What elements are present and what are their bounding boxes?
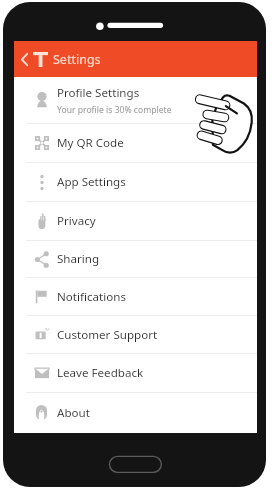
button[interactable]: Back — [17, 46, 31, 72]
button[interactable]: About — [14, 393, 257, 432]
staticText: Settings — [53, 51, 101, 68]
button[interactable]: App Settings — [14, 163, 257, 201]
staticText: Your profile is 30% complete — [57, 104, 172, 116]
staticText: About — [57, 405, 90, 421]
button[interactable]: My QR Code — [14, 124, 257, 162]
staticText: Profile Settings — [57, 85, 140, 101]
button[interactable]: Notifications — [14, 278, 257, 315]
staticText: Privacy — [57, 213, 96, 229]
button[interactable]: Profile Settings — [14, 77, 257, 123]
staticText: Customer Support — [57, 327, 158, 343]
staticText: Sharing — [57, 251, 100, 267]
button[interactable]: Sharing — [14, 241, 257, 277]
staticText: My QR Code — [57, 135, 124, 151]
button[interactable]: Privacy — [14, 202, 257, 240]
staticText: Leave Feedback — [57, 365, 144, 381]
staticText: Notifications — [57, 289, 126, 305]
button[interactable]: Leave Feedback — [14, 354, 257, 392]
button[interactable]: Customer Support — [14, 316, 257, 353]
staticText: App Settings — [57, 174, 126, 190]
